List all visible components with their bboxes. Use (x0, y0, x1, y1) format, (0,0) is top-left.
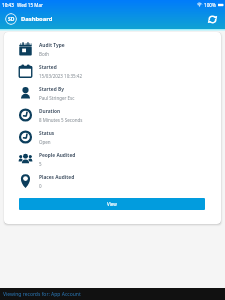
button[interactable]: Status (19, 126, 205, 148)
staticText: 0 (39, 183, 42, 189)
staticText: SD (8, 16, 15, 23)
staticText: 10:43 (2, 2, 14, 8)
staticText: Both (39, 51, 50, 57)
staticText: Viewing records for: App Account (3, 291, 81, 298)
button[interactable]: Audit Type (19, 38, 205, 60)
staticText: View (107, 201, 117, 207)
button[interactable]: Places Audited (19, 170, 205, 192)
staticText: Places Audited (39, 174, 75, 181)
staticText: 5 (39, 161, 42, 167)
staticText: Audit Type (39, 42, 65, 49)
staticText: 100% (204, 2, 216, 8)
staticText: People Audited (39, 152, 76, 159)
staticText: Duration (39, 108, 61, 115)
staticText: 8 Minutes 5 Seconds (39, 117, 83, 123)
button[interactable]: Started (19, 60, 205, 82)
staticText: Started (39, 64, 57, 71)
staticText: Paul Stringer Esc (39, 95, 75, 101)
staticText: 15/03/2023 10:35:42 (39, 73, 82, 79)
button[interactable]: View (19, 198, 205, 210)
staticText: Started By (39, 86, 64, 93)
staticText: Open (39, 139, 51, 145)
button[interactable]: Duration (19, 104, 205, 126)
button[interactable]: People Audited (19, 148, 205, 170)
staticText: Wed 15 Mar (17, 2, 43, 8)
button[interactable]: SD logo (5, 13, 17, 25)
button[interactable]: Started By (19, 82, 205, 104)
button[interactable]: Refresh (205, 12, 219, 26)
staticText: Status (39, 130, 55, 137)
staticText: Dashboard (21, 15, 53, 23)
